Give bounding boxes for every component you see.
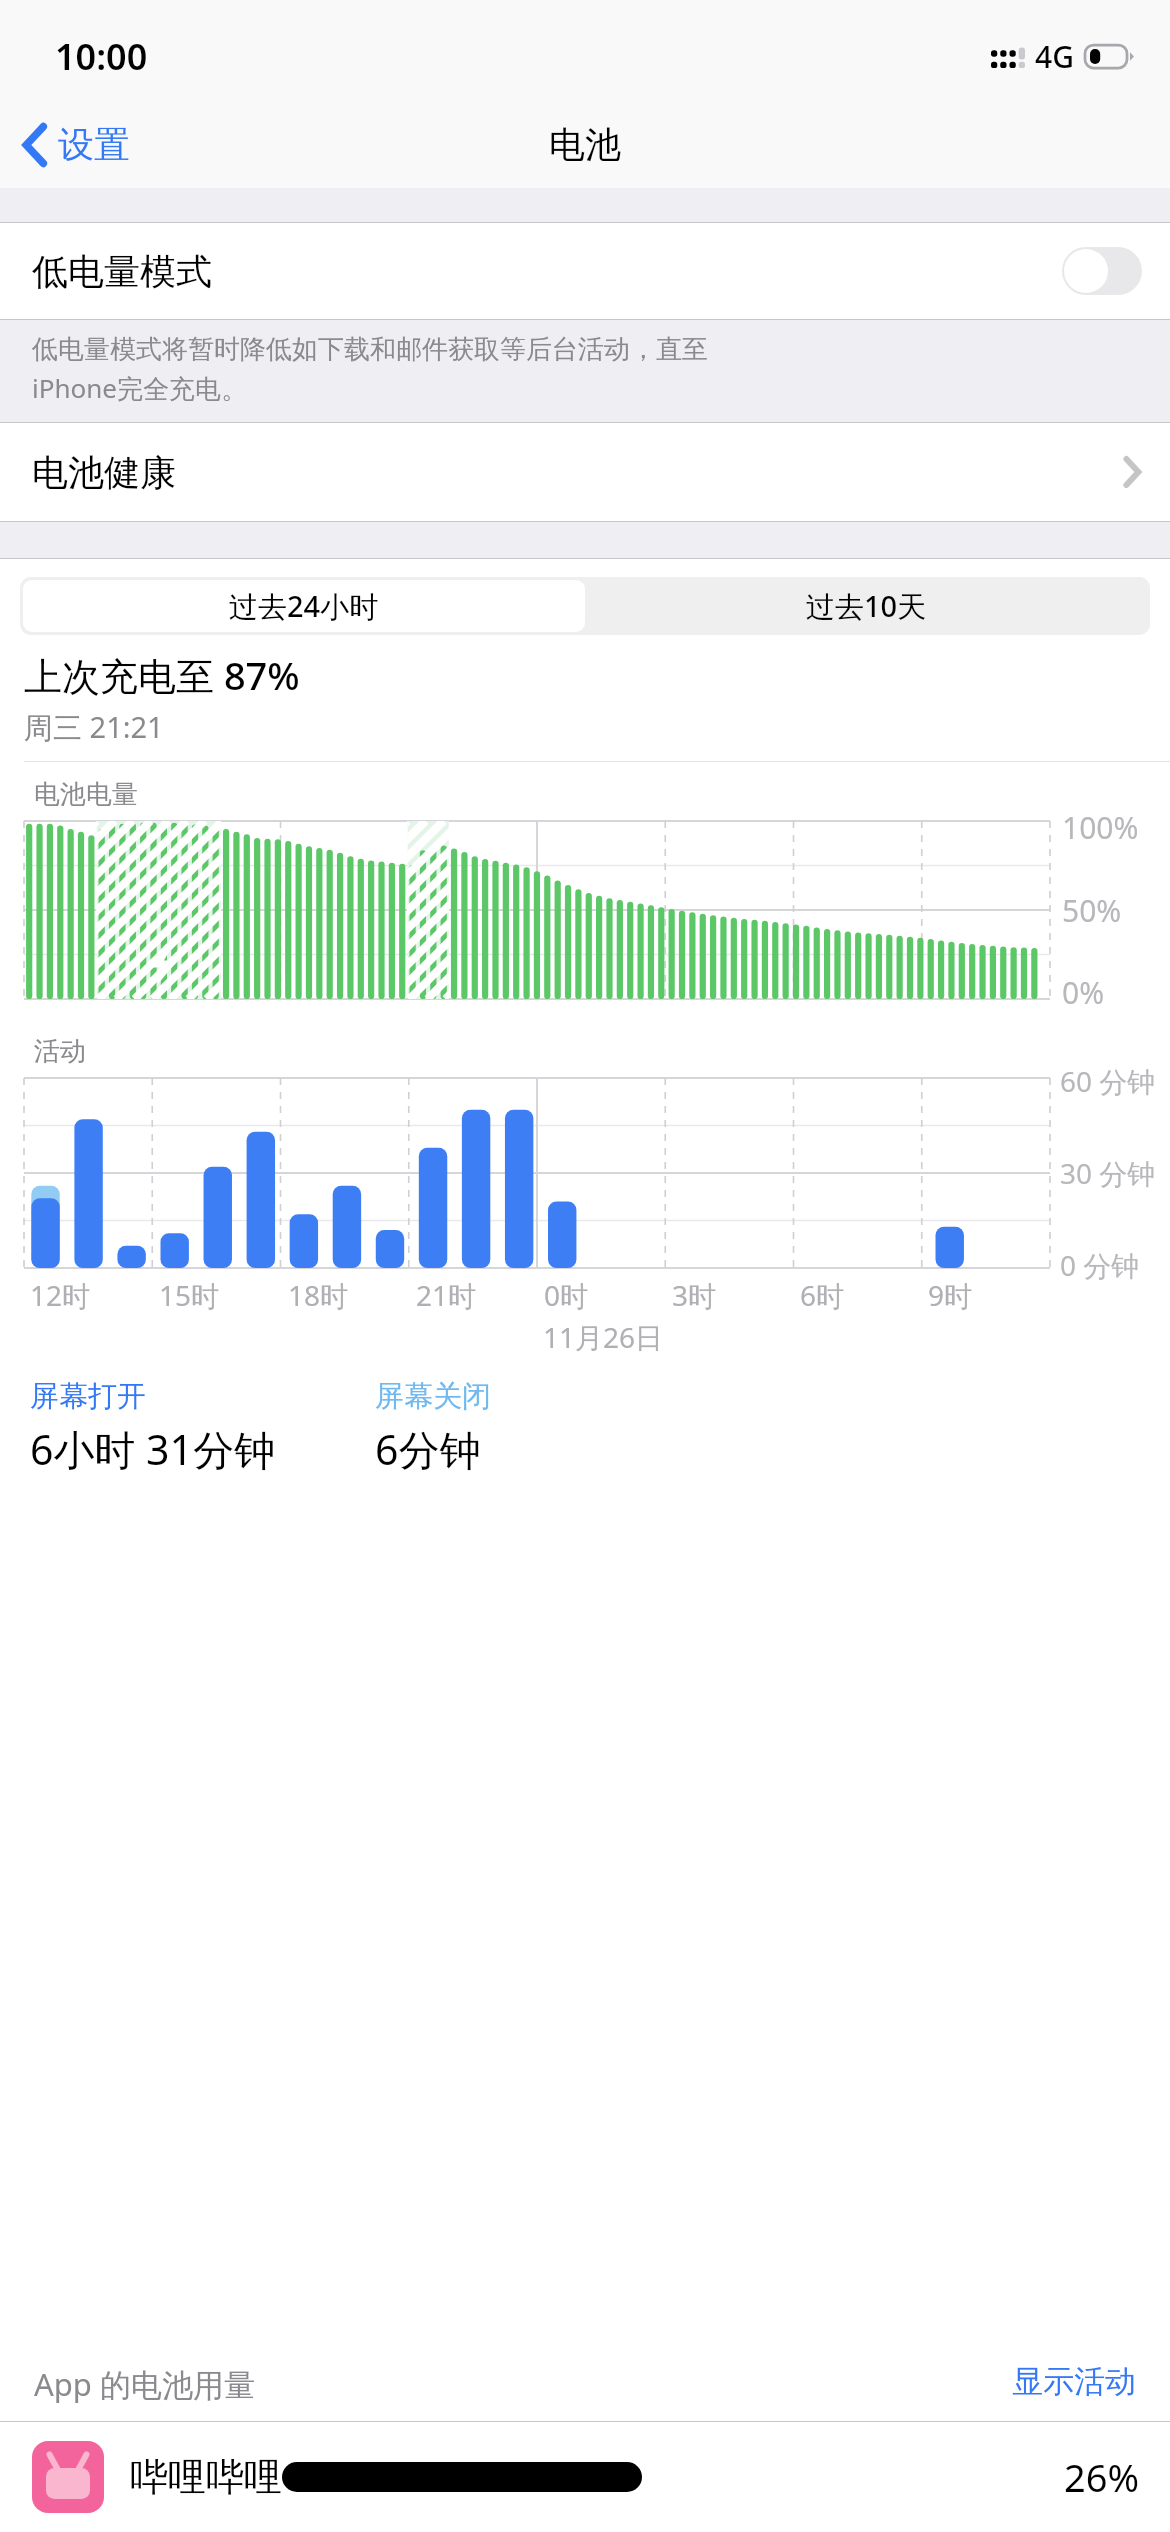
staticText: 周三 21:21 bbox=[24, 707, 164, 747]
button[interactable]: 电池健康 bbox=[0, 423, 1170, 521]
staticText: 3时 bbox=[672, 1276, 717, 1314]
staticText: 10:00 bbox=[55, 32, 148, 81]
button[interactable]: 过去10天 bbox=[585, 580, 1147, 632]
other: 更多 bbox=[1124, 457, 1140, 487]
staticText: 过去10天 bbox=[806, 586, 927, 626]
staticText: 6小时 31分钟 bbox=[30, 1421, 276, 1477]
staticText: 6分钟 bbox=[375, 1421, 481, 1477]
staticText: 活动 bbox=[34, 1035, 86, 1068]
staticText: 6时 bbox=[800, 1276, 845, 1314]
staticText: 低电量模式 bbox=[32, 249, 212, 294]
staticText: 上次充电至 87% bbox=[24, 649, 300, 701]
staticText: 设置 bbox=[58, 122, 130, 167]
staticText: 30 分钟 bbox=[1060, 1154, 1156, 1192]
staticText: 60 分钟 bbox=[1060, 1062, 1156, 1100]
staticText: 21时 bbox=[416, 1276, 477, 1314]
staticText: 100% bbox=[1062, 807, 1139, 848]
staticText: 15时 bbox=[159, 1276, 220, 1314]
staticText: 0% bbox=[1062, 972, 1105, 1013]
staticText: 显示活动 bbox=[1012, 2362, 1136, 2401]
staticText: 0时 bbox=[544, 1276, 589, 1314]
staticText: 9时 bbox=[928, 1276, 973, 1314]
button[interactable]: 低电量模式开关 bbox=[1062, 247, 1142, 295]
staticText: 电池电量 bbox=[34, 778, 138, 811]
staticText: 4G bbox=[1035, 36, 1074, 77]
staticText: 12时 bbox=[30, 1276, 91, 1314]
staticText: 50% bbox=[1062, 890, 1122, 931]
staticText: 过去24小时 bbox=[229, 586, 379, 626]
staticText: 低电量模式将暂时降低如下载和邮件获取等后台活动，直至 iPhone完全充电。 bbox=[32, 333, 708, 406]
staticText: 18时 bbox=[288, 1276, 349, 1314]
staticText: 屏幕关闭 bbox=[375, 1378, 491, 1415]
button[interactable]: 过去24小时 bbox=[23, 580, 585, 632]
staticText: 26% bbox=[1064, 2451, 1140, 2503]
button[interactable]: 设置 bbox=[16, 114, 138, 175]
staticText: 屏幕打开 bbox=[30, 1378, 146, 1415]
staticText: 电池健康 bbox=[32, 450, 176, 495]
button[interactable]: 哔哩哔哩 bbox=[0, 2422, 1170, 2532]
staticText: 11月26日 bbox=[543, 1318, 664, 1356]
staticText: 哔哩哔哩 bbox=[130, 2453, 282, 2501]
button[interactable]: 显示活动 bbox=[1008, 2358, 1140, 2405]
button[interactable]: 低电量模式 bbox=[0, 223, 1170, 319]
staticText: 0 分钟 bbox=[1060, 1246, 1140, 1284]
staticText: App 的电池用量 bbox=[34, 2363, 255, 2405]
staticText: 电池 bbox=[549, 122, 621, 167]
